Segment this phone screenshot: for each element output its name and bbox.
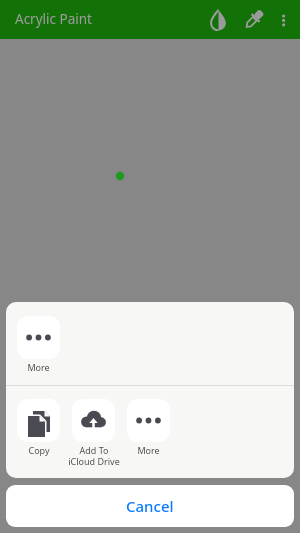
staticText: More	[27, 361, 50, 373]
button[interactable]	[127, 399, 170, 442]
button[interactable]	[243, 8, 265, 31]
button[interactable]	[208, 9, 229, 31]
staticText: Copy	[28, 444, 50, 456]
button[interactable]	[72, 399, 115, 442]
staticText: Acrylic Paint	[15, 10, 92, 28]
button[interactable]	[17, 399, 60, 442]
button[interactable]: Cancel	[6, 485, 294, 527]
button[interactable]	[17, 316, 60, 359]
staticText: Add To iCloud Drive	[68, 444, 120, 468]
staticText: More	[137, 444, 160, 456]
staticText: Cancel	[126, 496, 174, 516]
button[interactable]	[276, 5, 292, 35]
